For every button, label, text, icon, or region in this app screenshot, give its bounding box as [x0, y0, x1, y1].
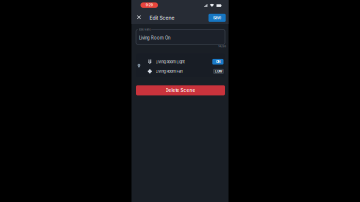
- staticText: LOW: [215, 69, 222, 73]
- staticText: Living Room Light: [156, 59, 185, 64]
- button[interactable]: Close: [134, 12, 144, 22]
- staticText: Delete Scene: [165, 88, 195, 93]
- button[interactable]: Save: [208, 14, 226, 22]
- staticText: Edit Scene: [149, 15, 174, 21]
- staticText: Scene Name: [138, 28, 150, 31]
- button[interactable]: Living Room Fan: [148, 66, 223, 76]
- staticText: Living Room On: [139, 35, 170, 40]
- button[interactable]: Living Room Light: [148, 57, 223, 66]
- button[interactable]: Delete Scene: [136, 85, 225, 95]
- staticText: 14/30: [218, 45, 226, 48]
- staticText: Save: [213, 16, 221, 20]
- staticText: Living Room Fan: [156, 69, 183, 74]
- staticText: ON: [216, 60, 220, 64]
- staticText: 9:29: [146, 3, 153, 7]
